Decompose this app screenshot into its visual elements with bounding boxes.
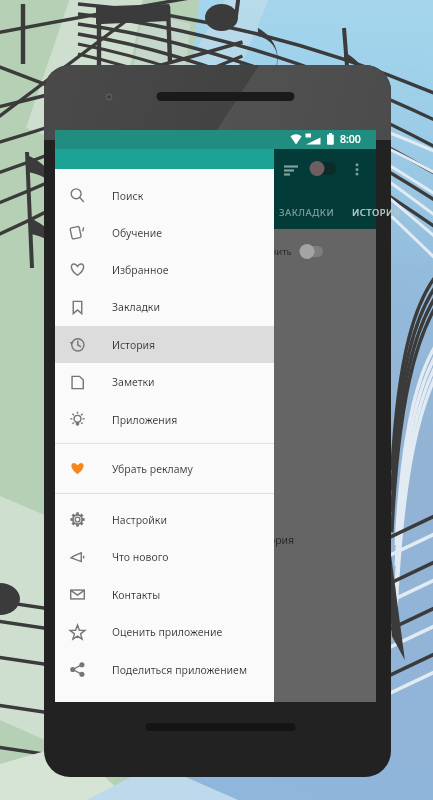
button[interactable]: Убрать рекламу [55, 450, 274, 487]
staticText: ИСТОРИЯ [352, 206, 401, 219]
button[interactable]: Избранное [55, 251, 274, 288]
staticText: Убрать рекламу [112, 462, 193, 476]
staticText: Поиск [112, 189, 144, 203]
button[interactable]: Night mode toggle [305, 155, 339, 181]
button[interactable]: ИСТОРИЯ [352, 198, 401, 226]
button[interactable]: Поделиться приложением [55, 651, 274, 688]
button[interactable]: Поиск [55, 130, 274, 702]
staticText: Оценить приложение [112, 625, 223, 639]
staticText: Сохранить [243, 245, 292, 258]
staticText: Настройки [112, 513, 167, 527]
staticText: 8:00 [340, 132, 361, 146]
staticText: Приложения [112, 413, 178, 427]
staticText: Обучение [112, 226, 163, 240]
button[interactable]: ЗАКЛАДКИ [279, 198, 335, 226]
button[interactable]: Контакты [55, 576, 274, 613]
button[interactable]: Настройки [55, 501, 274, 538]
button[interactable]: Что нового [55, 538, 274, 576]
button[interactable]: История [251, 533, 295, 547]
staticText: История [251, 533, 295, 547]
button[interactable]: История [55, 326, 274, 363]
button[interactable]: Поиск [55, 177, 274, 214]
button[interactable]: Заметки [55, 363, 274, 401]
staticText: Избранное [112, 263, 169, 277]
button[interactable]: Оценить приложение [55, 613, 274, 651]
staticText: Контакты [112, 588, 161, 602]
staticText: История [112, 338, 156, 352]
button[interactable]: Приложения [55, 401, 274, 438]
button[interactable]: Сохранить [243, 241, 325, 261]
staticText: Поделиться приложением [112, 663, 247, 677]
staticText: Закладки [112, 300, 160, 314]
staticText: Что нового [112, 550, 169, 564]
button[interactable]: Sort [277, 156, 305, 184]
staticText: Заметки [112, 375, 155, 389]
button[interactable]: Закладки [55, 288, 274, 326]
staticText: ЗАКЛАДКИ [279, 206, 335, 219]
button[interactable]: More options [343, 155, 371, 183]
button[interactable]: Обучение [55, 214, 274, 251]
